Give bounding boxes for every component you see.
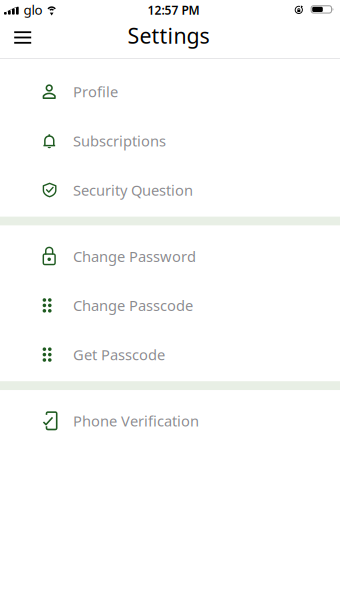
staticText: Profile	[73, 82, 118, 101]
staticText: Change Passcode	[73, 296, 193, 315]
button[interactable]: Change Password	[0, 232, 340, 281]
button[interactable]: Subscriptions	[0, 116, 340, 165]
staticText: Phone Verification	[73, 411, 199, 431]
staticText: Settings	[127, 21, 209, 49]
button[interactable]: Profile	[0, 67, 340, 116]
staticText: glo	[24, 1, 43, 18]
button[interactable]: Get Passcode	[0, 330, 340, 379]
button[interactable]: Menu	[0, 22, 45, 52]
staticText: Get Passcode	[73, 345, 165, 364]
staticText: Subscriptions	[73, 131, 166, 151]
button[interactable]: Phone Verification	[0, 396, 340, 445]
button[interactable]: Change Passcode	[0, 281, 340, 330]
staticText: 12:57 PM	[147, 2, 199, 18]
button[interactable]: Security Question	[0, 165, 340, 215]
staticText: Security Question	[73, 180, 193, 200]
staticText: Change Password	[73, 246, 196, 266]
